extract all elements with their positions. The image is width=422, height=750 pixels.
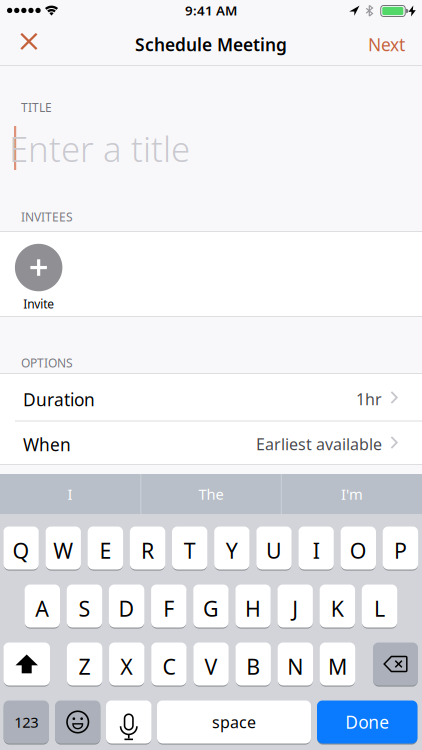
button[interactable]: T bbox=[172, 526, 207, 570]
staticText: M bbox=[328, 652, 347, 681]
staticText: F bbox=[163, 594, 174, 623]
button[interactable]: I'm bbox=[282, 474, 422, 514]
staticText: P bbox=[394, 536, 407, 565]
button[interactable]: N bbox=[278, 642, 313, 686]
staticText: Schedule Meeting bbox=[135, 33, 287, 56]
button[interactable]: S bbox=[67, 584, 102, 628]
staticText: The bbox=[198, 484, 223, 504]
staticText: I bbox=[313, 536, 320, 565]
staticText: Duration bbox=[23, 388, 95, 411]
button[interactable]: 123 bbox=[3, 700, 49, 744]
staticText: Next bbox=[368, 33, 405, 56]
staticText: J bbox=[292, 594, 298, 623]
button[interactable]: C bbox=[151, 642, 187, 686]
button[interactable]: V bbox=[193, 642, 229, 686]
staticText: L bbox=[374, 594, 385, 623]
button[interactable]: The bbox=[141, 474, 281, 514]
staticText: N bbox=[287, 652, 303, 681]
staticText: When bbox=[23, 433, 71, 456]
button[interactable]: D bbox=[109, 584, 144, 628]
button[interactable]: Duration bbox=[0, 0, 422, 46]
button[interactable]: Dictate bbox=[106, 700, 151, 744]
button[interactable]: F bbox=[151, 584, 186, 628]
button[interactable]: Z bbox=[67, 642, 102, 686]
button[interactable]: A bbox=[25, 584, 60, 628]
staticText: Q bbox=[13, 536, 30, 565]
staticText: E bbox=[99, 536, 111, 565]
button[interactable]: Y bbox=[214, 526, 250, 570]
staticText: 1hr bbox=[356, 388, 382, 410]
button[interactable]: W bbox=[45, 526, 81, 570]
button[interactable]: E bbox=[88, 526, 123, 570]
button[interactable]: Emoji bbox=[55, 700, 100, 744]
staticText: Earliest available bbox=[256, 433, 382, 455]
staticText: D bbox=[119, 594, 135, 623]
button[interactable]: K bbox=[320, 584, 355, 628]
staticText: Done bbox=[345, 710, 389, 733]
staticText: A bbox=[35, 594, 49, 623]
button[interactable]: Close bbox=[0, 0, 48, 58]
staticText: K bbox=[331, 594, 344, 623]
button[interactable]: J bbox=[277, 584, 313, 628]
button[interactable]: G bbox=[193, 584, 229, 628]
staticText: C bbox=[162, 652, 175, 681]
staticText: H bbox=[245, 594, 261, 623]
staticText: T bbox=[184, 536, 196, 565]
button[interactable]: space bbox=[157, 700, 311, 744]
button[interactable]: When bbox=[0, 0, 422, 43]
staticText: Y bbox=[226, 536, 238, 565]
staticText: B bbox=[246, 652, 260, 681]
button[interactable]: Q bbox=[3, 526, 39, 570]
staticText: U bbox=[266, 536, 282, 565]
button[interactable]: I bbox=[0, 474, 140, 514]
button[interactable]: P bbox=[383, 526, 418, 570]
staticText: O bbox=[350, 536, 367, 565]
staticText: V bbox=[204, 652, 217, 681]
button[interactable]: X bbox=[109, 642, 144, 686]
button[interactable]: Shift bbox=[3, 642, 50, 686]
button[interactable]: Next bbox=[0, 0, 405, 23]
button[interactable]: M bbox=[320, 642, 355, 686]
staticText: 9:41 AM bbox=[185, 1, 237, 19]
button[interactable]: Done bbox=[317, 700, 417, 744]
button[interactable]: B bbox=[235, 642, 271, 686]
button[interactable]: U bbox=[256, 526, 292, 570]
staticText: R bbox=[141, 536, 154, 565]
staticText: TITLE bbox=[21, 99, 52, 115]
button[interactable]: L bbox=[362, 584, 397, 628]
button[interactable]: R bbox=[130, 526, 165, 570]
staticText: S bbox=[78, 594, 90, 623]
staticText: X bbox=[120, 652, 133, 681]
button[interactable]: Delete bbox=[373, 642, 418, 686]
staticText: OPTIONS bbox=[21, 355, 73, 371]
button[interactable]: O bbox=[341, 526, 376, 570]
button[interactable]: H bbox=[235, 584, 271, 628]
staticText: space bbox=[212, 711, 256, 733]
staticText: Z bbox=[79, 652, 91, 681]
button[interactable]: I bbox=[298, 526, 334, 570]
staticText: W bbox=[53, 536, 73, 565]
staticText: I'm bbox=[341, 484, 363, 504]
staticText: 123 bbox=[14, 712, 38, 732]
staticText: I bbox=[67, 484, 72, 504]
staticText: Enter a title bbox=[9, 125, 190, 171]
staticText: INVITEES bbox=[21, 209, 73, 225]
button[interactable]: Invite bbox=[15, 244, 62, 312]
staticText: G bbox=[203, 594, 219, 623]
staticText: Invite bbox=[23, 296, 54, 312]
